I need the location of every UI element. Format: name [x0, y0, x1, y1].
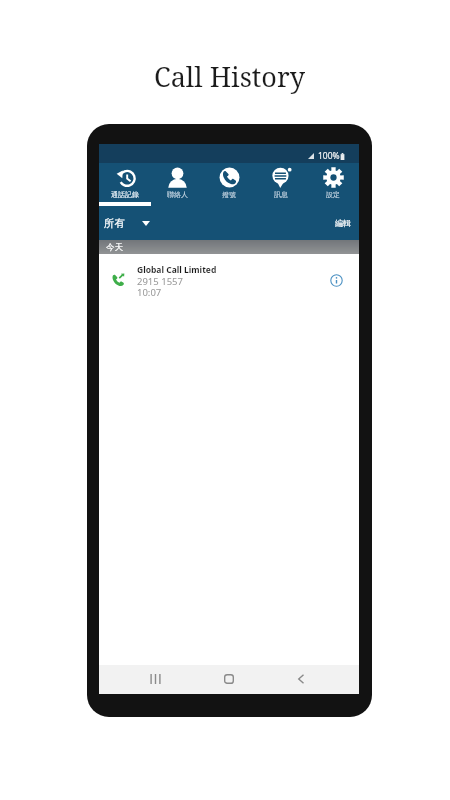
staticText: 聯絡人: [167, 190, 188, 199]
staticText: Call History: [154, 58, 305, 95]
button[interactable]: 編輯: [331, 214, 355, 232]
staticText: 編輯: [335, 218, 351, 228]
button[interactable]: Recents: [139, 664, 171, 693]
button[interactable]: 通話記錄: [99, 163, 151, 206]
button[interactable]: Call details: [324, 268, 348, 292]
staticText: 所有: [104, 217, 125, 230]
staticText: 訊息: [274, 190, 288, 199]
button[interactable]: Global Call Limited: [99, 254, 359, 306]
staticText: 撥號: [222, 190, 236, 199]
button[interactable]: Back: [285, 664, 317, 693]
staticText: 2915 1557: [137, 275, 183, 288]
button[interactable]: 所有: [103, 213, 151, 234]
staticText: Global Call Limited: [137, 264, 217, 276]
staticText: 今天: [106, 242, 123, 253]
button[interactable]: 設定: [307, 163, 359, 206]
button[interactable]: 訊息: [255, 163, 307, 206]
button[interactable]: 撥號: [203, 163, 255, 206]
button[interactable]: Home: [213, 664, 245, 693]
staticText: 通話記錄: [111, 190, 139, 199]
staticText: 100%: [318, 150, 340, 162]
staticText: 10:07: [137, 286, 162, 299]
button[interactable]: 聯絡人: [151, 163, 203, 206]
staticText: 設定: [326, 190, 340, 199]
